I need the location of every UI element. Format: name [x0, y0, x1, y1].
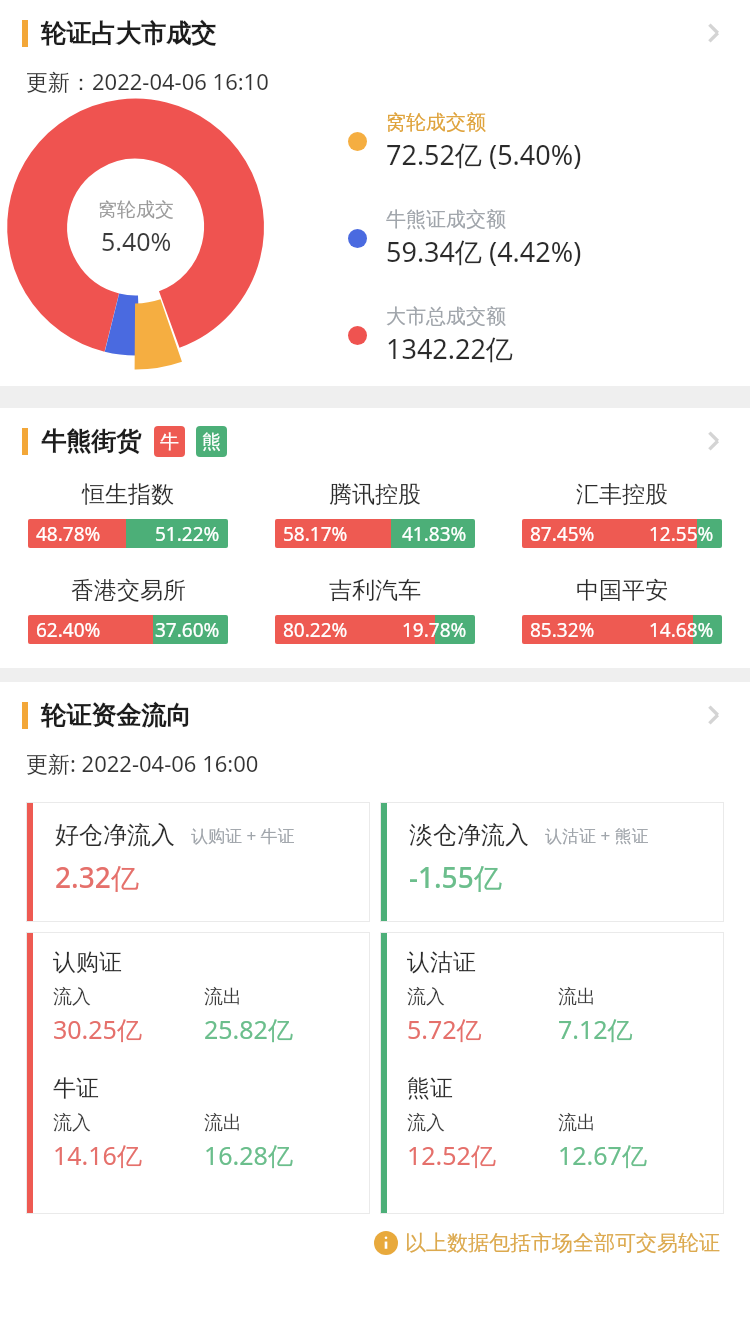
- staticText: 87.45%: [530, 521, 595, 547]
- staticText: 12.67亿: [558, 1138, 647, 1172]
- staticText: 中国平安: [576, 576, 668, 605]
- staticText: 熊证: [407, 1074, 453, 1103]
- staticText: 14.68%: [649, 617, 714, 643]
- staticText: 淡仓净流入: [409, 820, 529, 850]
- button[interactable]: 汇丰控股: [522, 480, 722, 548]
- button[interactable]: 中国平安: [522, 576, 722, 644]
- staticText: 25.82亿: [204, 1012, 293, 1046]
- button[interactable]: 认沽证: [380, 932, 724, 1214]
- staticText: 7.12亿: [558, 1012, 633, 1046]
- staticText: 12.55%: [649, 521, 714, 547]
- button[interactable]: 吉利汽车: [275, 576, 475, 644]
- button[interactable]: 香港交易所: [28, 576, 228, 644]
- staticText: 轮证资金流向: [41, 700, 191, 731]
- staticText: 吉利汽车: [329, 576, 421, 605]
- button[interactable]: 好仓净流入: [26, 802, 370, 922]
- staticText: 认购证 + 牛证: [191, 824, 295, 847]
- staticText: 30.25亿: [53, 1012, 142, 1046]
- staticText: 1342.22亿: [386, 330, 513, 367]
- staticText: 汇丰控股: [576, 480, 668, 509]
- staticText: 牛: [160, 430, 179, 454]
- staticText: 48.78%: [36, 521, 101, 547]
- staticText: 好仓净流入: [55, 820, 175, 850]
- button[interactable]: 恒生指数: [28, 480, 228, 548]
- button[interactable]: 轮证资金流向: [0, 682, 750, 748]
- staticText: 腾讯控股: [329, 480, 421, 509]
- staticText: 2.32亿: [55, 858, 139, 896]
- other: 查看更多: [690, 692, 736, 738]
- staticText: 5.72亿: [407, 1012, 482, 1046]
- staticText: 窝轮成交额: [386, 110, 486, 135]
- staticText: 认购证: [53, 948, 122, 977]
- other: 查看更多: [690, 10, 736, 56]
- button[interactable]: 牛熊街货: [0, 408, 750, 474]
- staticText: 58.17%: [283, 521, 348, 547]
- staticText: 牛熊证成交额: [386, 207, 506, 232]
- staticText: 62.40%: [36, 617, 101, 643]
- staticText: 大市总成交额: [386, 304, 506, 329]
- staticText: 更新：2022-04-06 16:10: [26, 66, 269, 96]
- staticText: 5.40%: [101, 224, 172, 258]
- staticText: 牛熊街货: [41, 426, 141, 457]
- staticText: 72.52亿 (5.40%): [386, 136, 582, 173]
- button[interactable]: 淡仓净流入: [380, 802, 724, 922]
- staticText: 认沽证 + 熊证: [545, 824, 649, 847]
- staticText: 37.60%: [155, 617, 220, 643]
- staticText: 窝轮成交: [98, 198, 174, 222]
- staticText: 流入: [407, 1111, 445, 1135]
- staticText: 流入: [53, 985, 91, 1009]
- staticText: 14.16亿: [53, 1138, 142, 1172]
- button[interactable]: 认购证: [26, 932, 370, 1214]
- staticText: 香港交易所: [71, 576, 186, 605]
- staticText: 轮证占大市成交: [41, 18, 216, 49]
- staticText: -1.55亿: [409, 858, 502, 896]
- staticText: 51.22%: [155, 521, 220, 547]
- staticText: 认沽证: [407, 948, 476, 977]
- staticText: 80.22%: [283, 617, 348, 643]
- staticText: 41.83%: [402, 521, 467, 547]
- button[interactable]: 腾讯控股: [275, 480, 475, 548]
- staticText: 19.78%: [402, 617, 467, 643]
- staticText: 牛证: [53, 1074, 99, 1103]
- staticText: 85.32%: [530, 617, 595, 643]
- staticText: 流出: [558, 985, 596, 1009]
- staticText: 流入: [53, 1111, 91, 1135]
- button[interactable]: 轮证占大市成交: [0, 0, 750, 66]
- staticText: 流出: [558, 1111, 596, 1135]
- staticText: 更新: 2022-04-06 16:00: [26, 748, 259, 778]
- staticText: 16.28亿: [204, 1138, 293, 1172]
- staticText: 流入: [407, 985, 445, 1009]
- other: 查看更多: [690, 418, 736, 464]
- staticText: 流出: [204, 1111, 242, 1135]
- staticText: 流出: [204, 985, 242, 1009]
- staticText: 以上数据包括市场全部可交易轮证: [405, 1230, 720, 1256]
- staticText: 恒生指数: [82, 480, 174, 509]
- staticText: 59.34亿 (4.42%): [386, 233, 582, 270]
- staticText: 熊: [202, 430, 221, 454]
- staticText: 12.52亿: [407, 1138, 496, 1172]
